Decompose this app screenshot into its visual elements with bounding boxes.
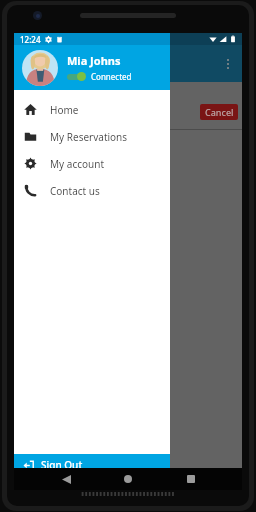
staticText: Cancel (205, 106, 234, 118)
button[interactable]: Mia Johns (14, 45, 170, 90)
button[interactable]: Back (55, 468, 77, 490)
button[interactable]: Home (117, 468, 139, 490)
staticText: Mia Johns (67, 53, 121, 68)
button[interactable]: Home (14, 96, 170, 123)
button[interactable]: Connected toggle (67, 72, 86, 81)
staticText: My Reservations (50, 130, 128, 144)
button[interactable]: Recent apps (180, 468, 202, 490)
button[interactable]: More options (218, 54, 238, 74)
button[interactable]: Contact us (14, 177, 170, 204)
button[interactable]: Cancel (200, 104, 238, 120)
staticText: Sign Out (41, 458, 83, 472)
staticText: 12:24 (20, 34, 41, 45)
button[interactable]: Sign Out (14, 454, 170, 476)
button[interactable]: My Reservations (14, 123, 170, 150)
staticText: Connected (91, 71, 132, 82)
staticText: My account (50, 157, 104, 171)
staticText: Contact us (50, 184, 100, 198)
button[interactable]: My account (14, 150, 170, 177)
staticText: Home (50, 103, 79, 117)
